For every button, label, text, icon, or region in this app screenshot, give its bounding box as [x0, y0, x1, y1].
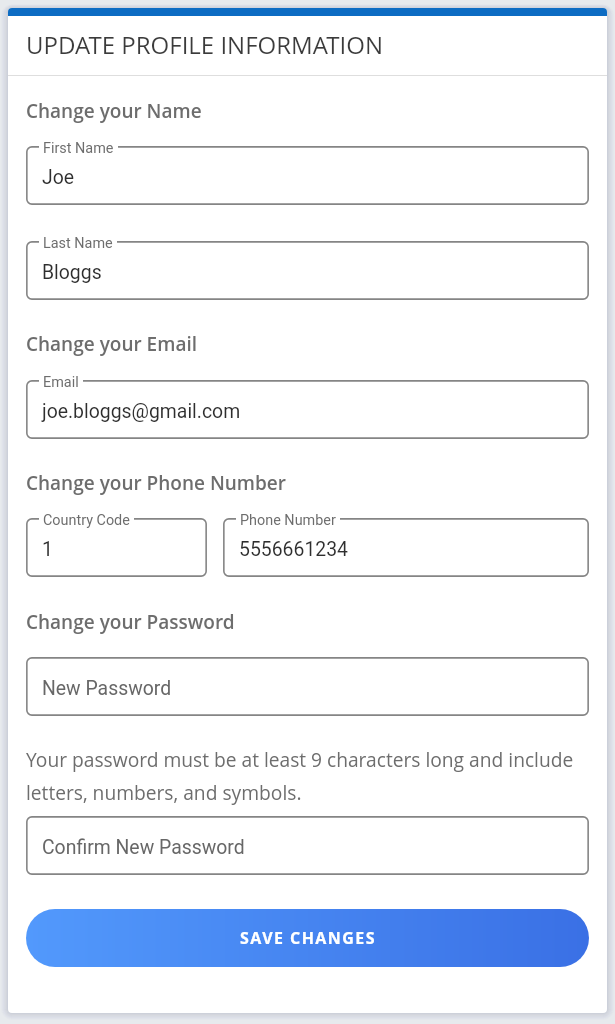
staticText: Country Code — [43, 512, 130, 529]
staticText: Change your Email — [26, 331, 197, 357]
button[interactable]: Bloggs — [26, 241, 589, 300]
button[interactable]: New Password — [26, 657, 589, 716]
staticText: Last Name — [43, 235, 113, 252]
staticText: SAVE CHANGES — [240, 927, 376, 949]
staticText: First Name — [43, 140, 114, 157]
button[interactable]: joe.bloggs@gmail.com — [26, 380, 589, 439]
button[interactable]: 5556661234 — [223, 518, 589, 577]
staticText: UPDATE PROFILE INFORMATION — [26, 28, 384, 61]
staticText: 5556661234 — [239, 538, 348, 561]
staticText: Confirm New Password — [42, 836, 245, 859]
staticText: Joe — [42, 166, 75, 189]
staticText: Change your Name — [26, 98, 202, 124]
staticText: Email — [43, 374, 79, 391]
staticText: Your password must be at least 9 charact… — [26, 746, 589, 806]
button[interactable]: Joe — [26, 146, 589, 205]
staticText: Phone Number — [240, 512, 336, 529]
button[interactable]: Confirm New Password — [26, 816, 589, 875]
button[interactable]: SAVE CHANGES — [26, 909, 589, 967]
staticText: joe.bloggs@gmail.com — [42, 400, 241, 423]
staticText: 1 — [42, 538, 53, 561]
button[interactable]: 1 — [26, 518, 207, 577]
staticText: Bloggs — [42, 261, 102, 284]
staticText: Change your Password — [26, 609, 235, 635]
staticText: Change your Phone Number — [26, 470, 286, 496]
staticText: New Password — [42, 677, 172, 700]
